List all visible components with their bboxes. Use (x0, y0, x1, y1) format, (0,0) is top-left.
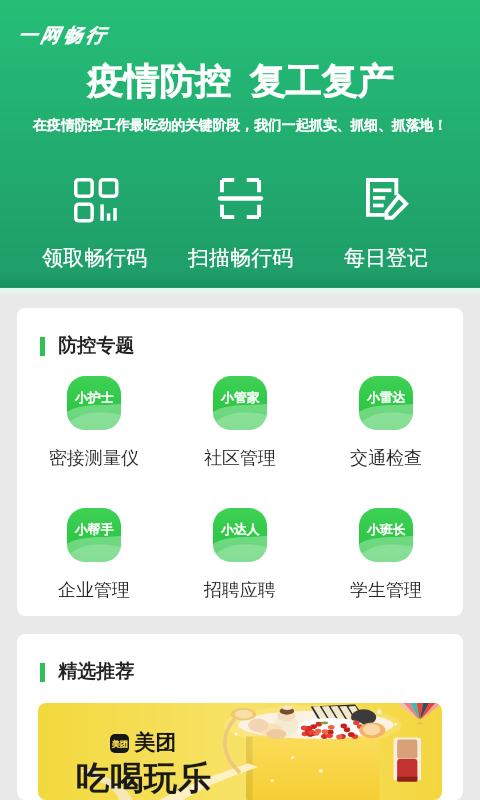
button[interactable]: 小护士 (21, 376, 167, 470)
button[interactable]: 小雷达 (313, 376, 459, 470)
staticText: 防控专题 (58, 334, 134, 358)
staticText: 企业管理 (58, 579, 130, 602)
staticText: 小雷达 (367, 390, 406, 406)
staticText: 扫描畅行码 (188, 245, 293, 271)
staticText: 每日登记 (344, 245, 428, 271)
button[interactable]: 小达人 (167, 508, 313, 602)
staticText: 美团 (112, 739, 128, 749)
staticText: 小管家 (221, 390, 260, 406)
staticText: 招聘应聘 (204, 579, 276, 602)
staticText: 美团 (134, 730, 176, 756)
staticText: 领取畅行码 (42, 245, 147, 271)
button[interactable]: 小班长 (313, 508, 459, 602)
staticText: 密接测量仪 (49, 447, 139, 470)
button[interactable]: 小管家 (167, 376, 313, 470)
staticText: 学生管理 (350, 579, 422, 602)
staticText: 在疫情防控工作最吃劲的关键阶段，我们一起抓实、抓细、抓落地！ (0, 117, 480, 134)
staticText: 小帮手 (75, 522, 114, 538)
staticText: 精选推荐 (58, 660, 134, 684)
button[interactable]: 扫描畅行码 (167, 174, 313, 275)
button[interactable]: 美团 (38, 703, 442, 800)
button[interactable]: 每日登记 (313, 174, 459, 275)
other: 领取畅行码 (74, 178, 115, 219)
button[interactable]: 领取畅行码 (21, 174, 167, 275)
staticText: 吃喝玩乐 (75, 758, 211, 800)
other: 每日登记 (366, 178, 407, 219)
staticText: 疫情防控 复工复产 (0, 56, 480, 105)
staticText: 社区管理 (204, 447, 276, 470)
staticText: 小达人 (221, 522, 260, 538)
staticText: 交通检查 (350, 447, 422, 470)
staticText: 小班长 (367, 522, 406, 538)
staticText: 小护士 (75, 390, 114, 406)
staticText: 一网畅行 (17, 24, 108, 48)
button[interactable]: 小帮手 (21, 508, 167, 602)
other: 扫描畅行码 (220, 178, 261, 219)
